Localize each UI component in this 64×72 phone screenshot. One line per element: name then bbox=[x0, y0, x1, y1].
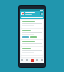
button[interactable] bbox=[21, 40, 43, 46]
button[interactable]: Primary action bbox=[21, 29, 43, 39]
button[interactable] bbox=[21, 20, 43, 28]
button[interactable]: Profile bbox=[41, 58, 43, 63]
button[interactable]: Primary action bbox=[22, 36, 29, 38]
button[interactable]: More options bbox=[40, 12, 43, 15]
button[interactable]: Open navigation menu bbox=[21, 12, 24, 15]
button[interactable]: Search bbox=[21, 17, 43, 18]
button[interactable]: Lists bbox=[26, 58, 28, 63]
button[interactable]: Secondary action bbox=[30, 36, 37, 38]
button[interactable]: Home bbox=[21, 58, 23, 63]
button[interactable] bbox=[21, 47, 43, 55]
button[interactable]: Add bbox=[31, 58, 34, 63]
button[interactable]: Alerts bbox=[36, 58, 38, 63]
